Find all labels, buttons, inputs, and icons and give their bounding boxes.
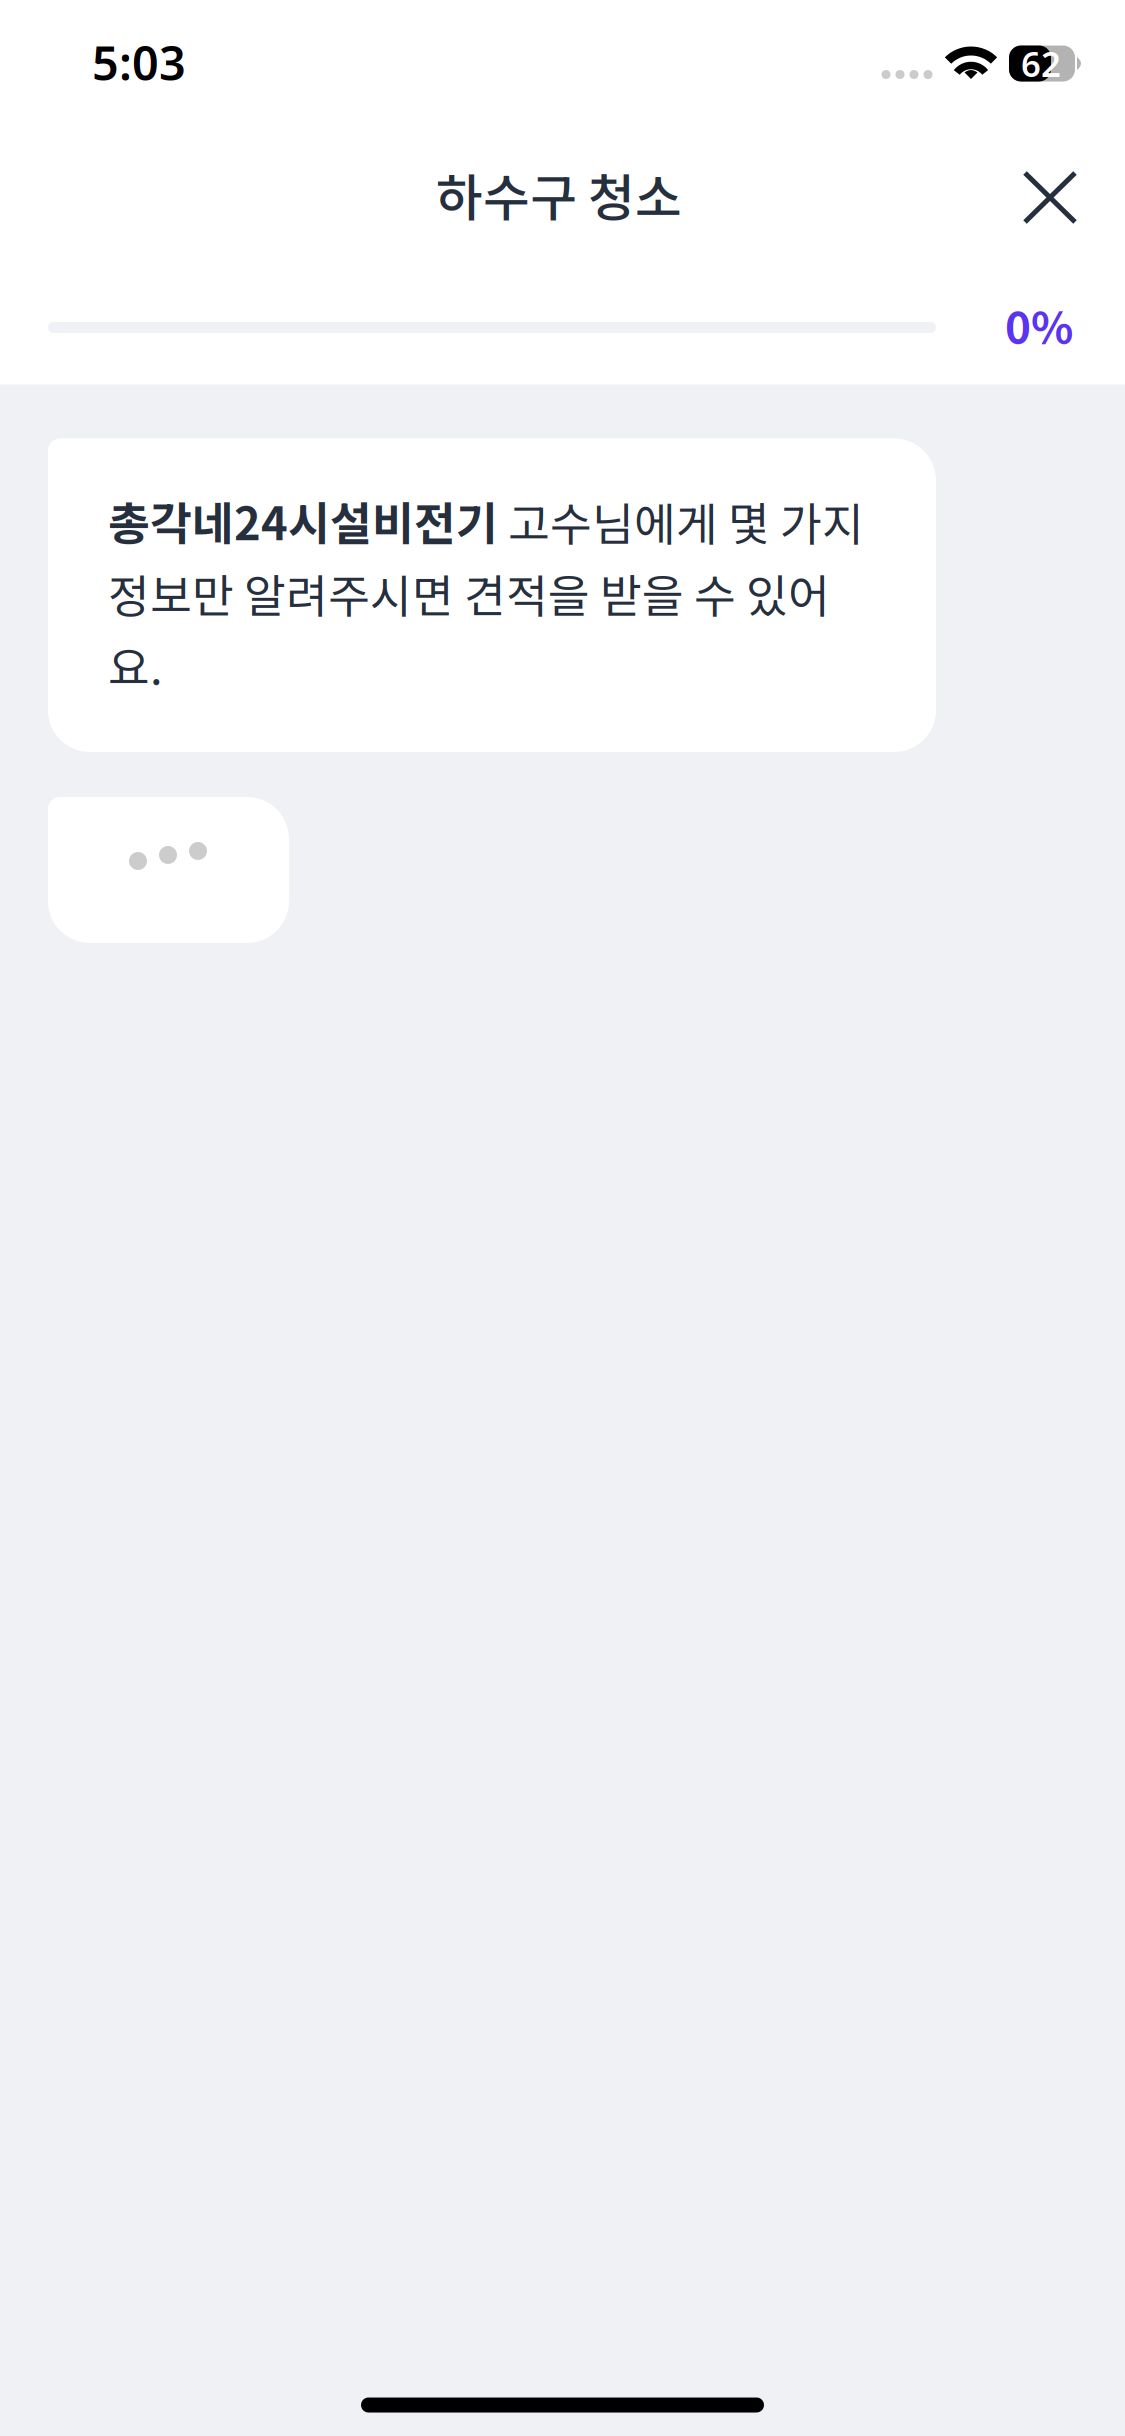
staticText: 0%: [1005, 293, 1073, 356]
staticText: 총각네24시설비전기 고수님에게 몇 가지 정보만 알려주시면 견적을 받을 수…: [108, 488, 864, 697]
staticText: 하수구 청소: [436, 158, 682, 231]
staticText: 5:03: [92, 31, 186, 94]
staticText: 62: [1021, 40, 1061, 87]
button[interactable]: Close: [1000, 148, 1100, 247]
